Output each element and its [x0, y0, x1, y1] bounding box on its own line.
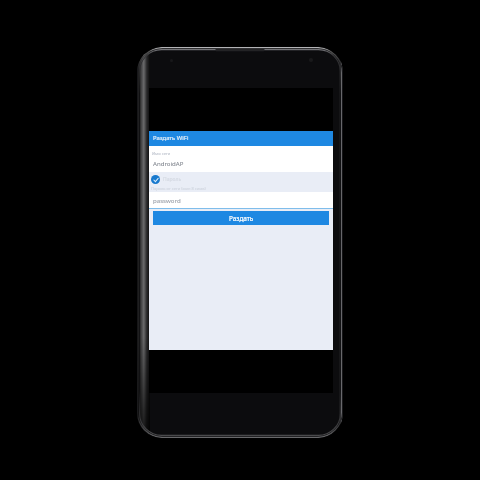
- staticText: Имя сети: [152, 151, 171, 157]
- staticText: Пароль от сети (мин 8 симв): [151, 186, 206, 191]
- staticText: Пароль: [163, 176, 182, 183]
- staticText: AndroidAP: [153, 159, 184, 167]
- staticText: Раздать: [229, 214, 254, 223]
- button[interactable]: Раздать: [153, 211, 329, 225]
- staticText: password: [153, 196, 181, 204]
- button[interactable]: Раздать WiFi: [149, 131, 333, 146]
- staticText: Раздать WiFi: [153, 134, 189, 142]
- button[interactable]: Пароль: [151, 174, 182, 185]
